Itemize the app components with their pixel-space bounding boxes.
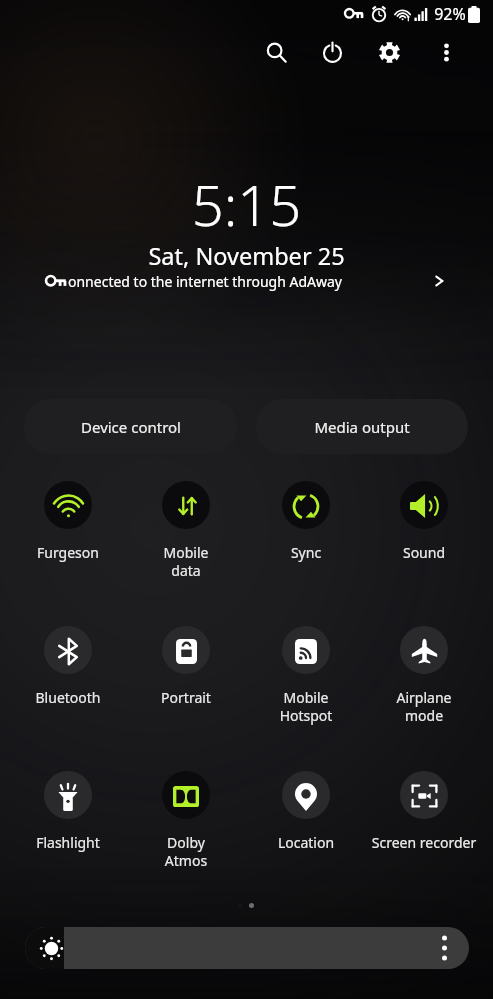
button[interactable]: Screen recorder: [365, 767, 483, 852]
button[interactable]: Flashlight: [9, 767, 127, 852]
button[interactable]: Power: [314, 34, 350, 70]
button[interactable]: Sync: [247, 477, 365, 562]
staticText: Media output: [314, 417, 410, 437]
staticText: Flashlight: [9, 833, 127, 852]
staticText: Furgeson: [9, 543, 127, 562]
staticText: Sat, November 25: [0, 240, 493, 272]
button[interactable]: Mobile data: [127, 477, 245, 580]
button[interactable]: Dolby Atmos: [127, 767, 245, 870]
staticText: Mobile data: [127, 543, 245, 580]
staticText: 5:15: [0, 166, 493, 242]
staticText: Screen recorder: [365, 833, 483, 852]
staticText: onnected to the internet through AdAway: [68, 272, 342, 291]
button[interactable]: Search: [258, 34, 294, 70]
button[interactable]: Media output: [256, 399, 468, 454]
button[interactable]: Settings: [371, 34, 407, 70]
staticText: Sync: [247, 543, 365, 562]
staticText: Airplane mode: [365, 688, 483, 725]
button[interactable]: Location: [247, 767, 365, 852]
staticText: Mobile Hotspot: [247, 688, 365, 725]
button[interactable]: Furgeson: [9, 477, 127, 562]
staticText: Sound: [365, 543, 483, 562]
button[interactable]: onnected to the internet through AdAway: [0, 266, 493, 296]
button[interactable]: Device control: [24, 399, 237, 454]
staticText: Bluetooth: [9, 688, 127, 707]
staticText: Location: [247, 833, 365, 852]
staticText: Portrait: [127, 688, 245, 707]
button[interactable]: Mobile Hotspot: [247, 622, 365, 725]
staticText: 92%: [434, 3, 466, 25]
staticText: Dolby Atmos: [127, 833, 245, 870]
button[interactable]: Portrait: [127, 622, 245, 707]
button[interactable]: [25, 927, 469, 969]
button[interactable]: Airplane mode: [365, 622, 483, 725]
button[interactable]: Sound: [365, 477, 483, 562]
staticText: Device control: [81, 417, 181, 437]
button[interactable]: Bluetooth: [9, 622, 127, 707]
button[interactable]: More options: [428, 34, 464, 70]
